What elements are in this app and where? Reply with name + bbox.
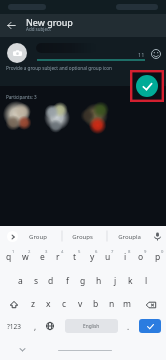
staticText: 5	[78, 249, 81, 255]
staticText: r	[56, 251, 60, 263]
staticText: .	[127, 321, 130, 332]
button[interactable]: d	[43, 271, 59, 291]
staticText: s	[34, 275, 39, 287]
button[interactable]: Comma	[30, 319, 41, 333]
button[interactable]: Back	[3, 17, 20, 34]
staticText: k	[128, 275, 133, 287]
staticText: l	[145, 275, 148, 287]
staticText: q	[6, 251, 12, 263]
staticText: g	[80, 275, 86, 287]
button[interactable]: Voice input	[151, 230, 163, 242]
button[interactable]: Participant	[6, 104, 32, 130]
staticText: i	[124, 251, 127, 263]
staticText: d	[48, 275, 54, 287]
button[interactable]: f	[59, 271, 75, 291]
staticText: p	[155, 251, 161, 263]
staticText: a	[18, 275, 23, 287]
staticText: 7	[111, 249, 114, 255]
button[interactable]: i	[117, 247, 133, 267]
staticText: 0	[161, 249, 164, 255]
button[interactable]: h	[91, 271, 107, 291]
staticText: 11	[138, 51, 145, 58]
button[interactable]: p	[150, 247, 166, 267]
staticText: Groups	[72, 233, 93, 241]
staticText: n	[109, 298, 115, 310]
button[interactable]: m	[119, 294, 135, 314]
button[interactable]: Change language	[44, 319, 56, 333]
button[interactable]: c	[56, 294, 72, 314]
staticText: e	[40, 251, 45, 263]
button[interactable]: y	[84, 247, 100, 267]
button[interactable]: u	[100, 247, 116, 267]
button[interactable]: Shift	[6, 297, 21, 312]
staticText: 2	[28, 249, 31, 255]
button[interactable]: o	[133, 247, 149, 267]
button[interactable]: e	[34, 247, 50, 267]
button[interactable]: More suggestions	[7, 231, 18, 242]
button[interactable]: Emoji	[149, 47, 162, 60]
button[interactable]: Groupla	[111, 229, 147, 244]
staticText: w	[22, 251, 29, 263]
button[interactable]: k	[122, 271, 138, 291]
button[interactable]: a	[12, 271, 28, 291]
button[interactable]: n	[104, 294, 120, 314]
button[interactable]: g	[75, 271, 91, 291]
staticText: 8	[128, 249, 131, 255]
staticText: Add subject	[26, 26, 51, 32]
button[interactable]: New group	[26, 14, 166, 37]
staticText: j	[114, 275, 117, 287]
staticText: v	[78, 298, 83, 310]
staticText: New group	[26, 16, 73, 28]
staticText: 4	[61, 249, 64, 255]
staticText: y	[90, 251, 95, 263]
button[interactable]: Participant	[82, 104, 108, 130]
staticText: Participants: 3	[6, 94, 37, 100]
button[interactable]: r	[50, 247, 66, 267]
staticText: ,	[34, 321, 37, 332]
staticText: u	[105, 251, 111, 263]
button[interactable]: q	[1, 247, 17, 267]
staticText: t	[73, 251, 77, 263]
staticText: 1	[12, 249, 15, 255]
button[interactable]: English	[65, 319, 118, 333]
button[interactable]: Enter	[139, 319, 161, 333]
staticText: ?123	[7, 322, 21, 331]
button[interactable]: j	[107, 271, 123, 291]
button[interactable]: z	[25, 294, 41, 314]
staticText: 3	[45, 249, 48, 255]
button[interactable]: Period	[123, 319, 134, 333]
button[interactable]: t	[67, 247, 83, 267]
staticText: 9	[144, 249, 147, 255]
button[interactable]: Participant	[44, 104, 70, 130]
button[interactable]: s	[28, 271, 44, 291]
button[interactable]: Hide keyboard	[17, 344, 28, 355]
button[interactable]: x	[40, 294, 56, 314]
staticText: Provide a group subject and optional gro…	[6, 65, 112, 71]
button[interactable]: l	[138, 271, 154, 291]
button[interactable]: Backspace	[143, 297, 158, 312]
staticText: m	[123, 298, 131, 310]
staticText: English	[83, 323, 100, 330]
staticText: b	[93, 298, 99, 310]
button[interactable]: ?123	[5, 319, 23, 333]
staticText: Group	[29, 233, 47, 241]
staticText: f	[66, 275, 69, 287]
button[interactable]: Group	[20, 229, 56, 244]
staticText: z	[31, 298, 35, 310]
button[interactable]: Groups	[64, 229, 100, 244]
button[interactable]: w	[17, 247, 33, 267]
staticText: 6	[95, 249, 98, 255]
button[interactable]: Create group	[136, 75, 158, 97]
button[interactable]: Add group icon	[7, 43, 27, 63]
staticText: c	[62, 298, 67, 310]
button[interactable]: b	[88, 294, 104, 314]
staticText: Groupla	[118, 233, 141, 241]
button[interactable]: v	[72, 294, 88, 314]
staticText: o	[138, 251, 144, 263]
staticText: h	[96, 275, 102, 287]
staticText: x	[46, 298, 51, 310]
